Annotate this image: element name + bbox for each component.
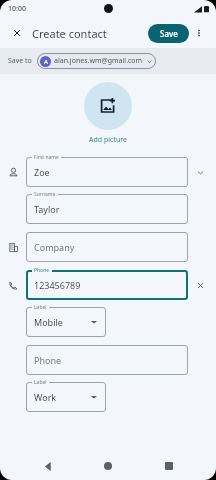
- button[interactable]: A: [40, 53, 153, 69]
- staticText: Label: [34, 304, 47, 311]
- button[interactable]: Recent apps: [156, 453, 182, 479]
- button[interactable]: Expand name fields: [188, 160, 212, 184]
- button[interactable]: Save: [148, 24, 189, 43]
- button[interactable]: Company: [26, 232, 188, 262]
- button[interactable]: Back: [35, 453, 61, 479]
- button[interactable]: Phone: [26, 270, 188, 300]
- staticText: Phone: [34, 267, 50, 274]
- staticText: Zoe: [34, 166, 50, 178]
- button[interactable]: Phone: [26, 345, 188, 375]
- staticText: 10:00: [8, 4, 26, 14]
- staticText: Surname: [34, 191, 56, 198]
- staticText: Add picture: [89, 135, 127, 145]
- button[interactable]: More options: [189, 23, 209, 43]
- button[interactable]: Surname: [26, 194, 188, 224]
- staticText: alan.jones.wm@gmail.com: [54, 56, 143, 66]
- button[interactable]: Label: [26, 307, 106, 337]
- staticText: Save: [160, 28, 178, 39]
- staticText: Save to: [8, 56, 32, 66]
- staticText: Label: [34, 379, 47, 386]
- staticText: Company: [34, 241, 75, 253]
- button[interactable]: Close: [7, 23, 27, 43]
- staticText: First name: [34, 154, 59, 161]
- staticText: Work: [34, 391, 57, 403]
- button[interactable]: Clear phone: [188, 273, 212, 297]
- button[interactable]: Add picture: [0, 82, 216, 145]
- button[interactable]: Home: [95, 453, 121, 479]
- staticText: 123456789: [34, 279, 81, 291]
- staticText: A: [44, 58, 48, 66]
- button[interactable]: Label: [26, 382, 106, 412]
- staticText: Create contact: [32, 26, 107, 41]
- staticText: Phone: [34, 354, 62, 366]
- staticText: Mobile: [34, 316, 63, 328]
- staticText: Taylor: [34, 203, 60, 215]
- button[interactable]: First name: [26, 157, 188, 187]
